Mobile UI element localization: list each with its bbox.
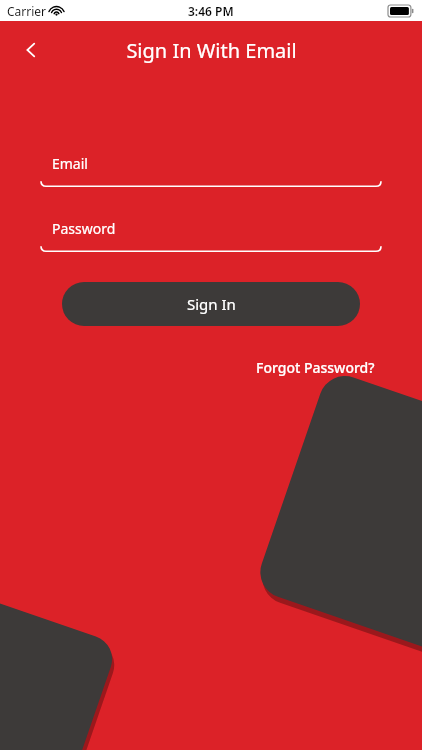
staticText: Sign In With Email [126, 37, 297, 64]
button[interactable]: Back [14, 33, 48, 67]
button[interactable]: Email [41, 145, 381, 189]
button[interactable]: Forgot Password? [252, 354, 379, 381]
button[interactable]: Password [41, 210, 381, 254]
staticText: Forgot Password? [256, 358, 375, 377]
staticText: 3:46 PM [188, 3, 234, 19]
staticText: Sign In [187, 294, 236, 314]
staticText: Password [52, 219, 116, 238]
staticText: Carrier [7, 3, 47, 19]
staticText: Email [52, 154, 88, 173]
button[interactable]: Sign In [62, 282, 360, 326]
